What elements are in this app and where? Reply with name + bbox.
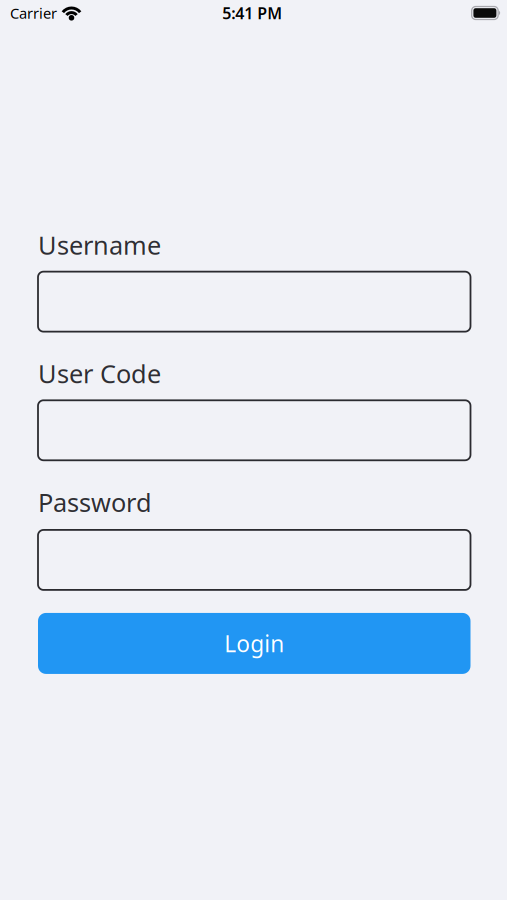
staticText: Username xyxy=(38,228,161,262)
button[interactable]: User Code text field xyxy=(38,400,470,460)
staticText: Carrier xyxy=(10,3,57,23)
staticText: Password xyxy=(38,485,152,519)
button[interactable]: Username text field xyxy=(38,272,470,332)
staticText: User Code xyxy=(38,357,161,390)
staticText: 5:41 PM xyxy=(222,2,282,24)
staticText: Login xyxy=(224,628,284,658)
button[interactable]: Password text field xyxy=(38,530,470,590)
button[interactable]: Login xyxy=(38,613,470,674)
